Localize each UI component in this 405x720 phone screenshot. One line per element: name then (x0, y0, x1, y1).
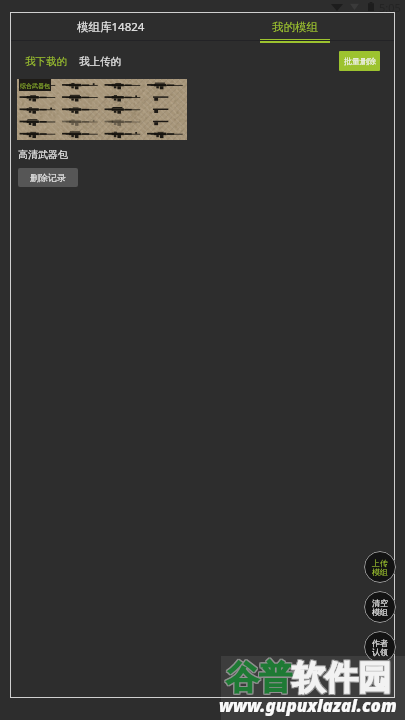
staticText: 谷普软件园 (227, 656, 392, 698)
staticText: 上传 模组 (372, 558, 388, 577)
staticText: 谷普软件园 (226, 656, 391, 698)
button[interactable]: 我上传的 (76, 51, 124, 72)
button[interactable]: 作者认领 (364, 631, 396, 663)
staticText: 综合武器包 (20, 82, 50, 90)
staticText: 批量删除 (344, 56, 376, 66)
staticText: 谷普软件园 (227, 658, 392, 700)
button[interactable]: 上传模组 (364, 551, 396, 583)
staticText: 我下载的 (25, 55, 67, 68)
staticText: 我上传的 (79, 55, 121, 68)
staticText: 谷普软件园 (227, 657, 392, 699)
staticText: www.gupuxlazal.com (219, 694, 397, 717)
button[interactable]: 删除记录 (18, 168, 78, 187)
button[interactable]: 我的模组 (202, 12, 395, 41)
staticText: 高清武器包 (18, 148, 68, 161)
staticText: 清空 模组 (372, 598, 388, 617)
staticText: 删除记录 (30, 172, 66, 183)
staticText: 谷普软件园 (225, 658, 390, 700)
staticText: 作者 认领 (372, 638, 388, 657)
button[interactable]: 清空模组 (364, 591, 396, 623)
staticText: 我的模组 (272, 20, 318, 34)
staticText: 谷普软件园 (225, 657, 390, 699)
staticText: 谷普软件园 (225, 656, 390, 698)
staticText: 谷普软件园 (226, 657, 391, 699)
staticText: 5:05 (379, 0, 401, 12)
button[interactable]: 批量删除 (339, 51, 380, 71)
staticText: 模组库14824 (77, 19, 145, 35)
staticText: 谷普软件园 (226, 658, 391, 700)
button[interactable]: 模组库14824 (10, 12, 202, 41)
button[interactable]: 我下载的 (22, 51, 70, 72)
